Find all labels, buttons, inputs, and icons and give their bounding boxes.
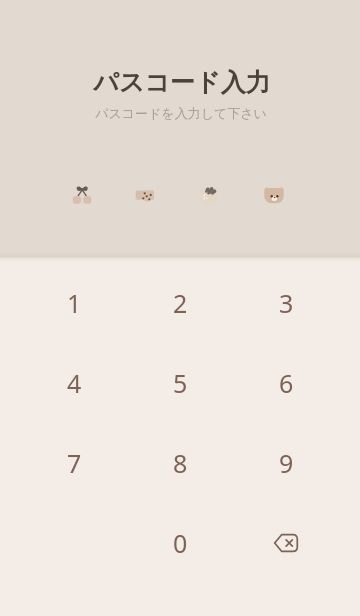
button[interactable]: 8	[127, 423, 233, 503]
staticText: 4	[67, 366, 82, 400]
staticText: 6	[279, 366, 294, 400]
button[interactable]: Delete	[233, 503, 339, 583]
button[interactable]: 4	[22, 343, 127, 423]
button[interactable]: 1	[22, 263, 127, 343]
button[interactable]: 2	[127, 263, 233, 343]
staticText: 7	[67, 446, 82, 480]
button[interactable]: 3	[233, 263, 339, 343]
staticText: 1	[67, 286, 82, 320]
button[interactable]: 7	[22, 423, 127, 503]
staticText: 0	[173, 526, 188, 560]
staticText: 9	[279, 446, 294, 480]
button[interactable]: 5	[127, 343, 233, 423]
staticText: パスコードを入力して下さい	[95, 105, 267, 121]
staticText: 8	[173, 446, 188, 480]
staticText: 2	[173, 286, 188, 320]
staticText: 5	[173, 366, 188, 400]
button[interactable]: 6	[233, 343, 339, 423]
button[interactable]: 0	[127, 503, 233, 583]
button[interactable]: 9	[233, 423, 339, 503]
staticText: 3	[279, 286, 294, 320]
staticText: パスコード入力	[93, 67, 271, 98]
